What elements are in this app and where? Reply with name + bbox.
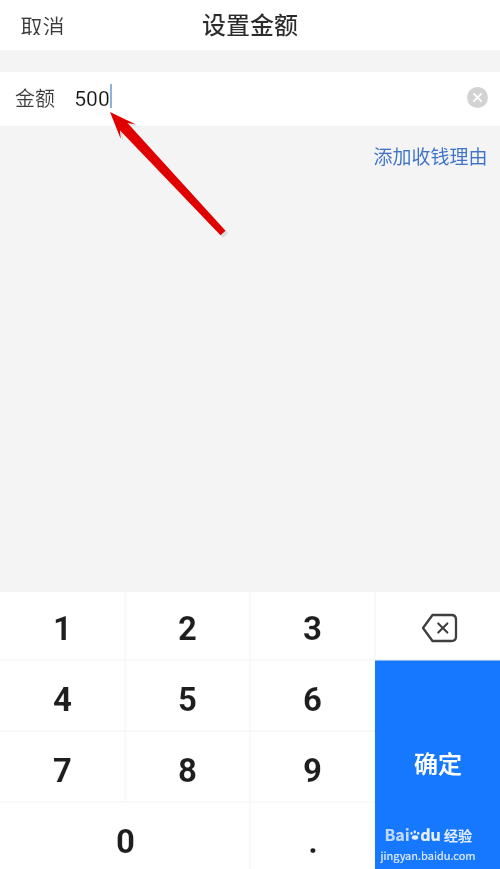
staticText: 4 [53,680,72,719]
staticText: 9 [303,751,322,790]
staticText: 5 [178,680,197,719]
staticText: 500 [74,87,110,112]
staticText: 1 [53,609,72,648]
button[interactable]: 0 [0,802,250,869]
staticText: du [420,822,441,845]
button[interactable]: . [250,802,375,869]
staticText: 设置金额 [202,6,298,41]
staticText: 7 [53,751,72,790]
staticText: 添加收钱理由 [373,142,488,170]
staticText: 经验 [444,825,472,845]
staticText: 6 [303,680,322,719]
button[interactable]: 1 [0,592,125,660]
staticText: 金额 [15,83,55,112]
button[interactable]: 2 [125,592,250,660]
staticText: . [308,822,318,861]
button[interactable]: 3 [250,592,375,660]
button[interactable]: 7 [0,731,125,802]
button[interactable]: Clear amount [461,81,493,113]
button[interactable]: 5 [125,660,250,731]
staticText: 0 [116,822,135,861]
staticText: jingyan.baidu.com [380,847,476,863]
button[interactable]: 8 [125,731,250,802]
staticText: 3 [303,609,322,648]
button[interactable]: 确定 [375,660,500,869]
staticText: 8 [178,751,197,790]
staticText: 取消 [20,9,65,35]
button[interactable]: Backspace [375,592,500,660]
button[interactable]: 9 [250,731,375,802]
staticText: Bai [384,822,410,845]
staticText: 确定 [414,745,462,780]
button[interactable]: 6 [250,660,375,731]
staticText: 2 [178,609,197,648]
button[interactable]: 取消 [0,0,85,47]
button[interactable]: 4 [0,660,125,731]
button[interactable]: 添加收钱理由 [358,136,500,176]
